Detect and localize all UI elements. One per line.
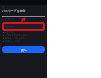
- button[interactable]: Back: [0, 4, 6, 10]
- staticText: 8文字以上: [5, 31, 16, 34]
- button[interactable]: Show password: [40, 25, 44, 29]
- staticText: 記号を 1 つ含む: [5, 40, 21, 43]
- button[interactable]: ••••••••: [2, 22, 45, 31]
- staticText: 次へ: [21, 48, 27, 52]
- staticText: 大文字と小文字を含む: [5, 34, 28, 37]
- staticText: ••••••••: [5, 25, 14, 29]
- staticText: パスワード: [2, 18, 15, 21]
- staticText: パスワードを設定: [2, 9, 26, 13]
- button[interactable]: 次へ: [2, 46, 45, 53]
- staticText: 数字を 1 つ以上含む: [5, 37, 26, 40]
